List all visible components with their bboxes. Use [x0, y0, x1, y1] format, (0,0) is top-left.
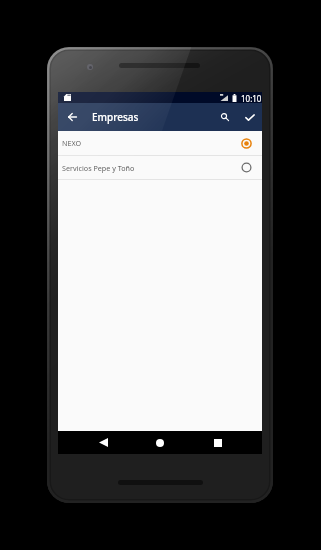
button[interactable]: Recents [202, 431, 234, 454]
button[interactable]: Search [211, 103, 239, 131]
button[interactable]: Home [144, 431, 176, 454]
button[interactable]: NEXO [58, 131, 262, 155]
staticText: NEXO [62, 138, 82, 148]
button[interactable]: Confirm [236, 103, 264, 131]
staticText: Servicios Pepe y Toño [62, 163, 135, 173]
staticText: 10:10 [241, 93, 262, 104]
staticText: Empresas [92, 110, 139, 124]
button[interactable]: Back [87, 431, 119, 454]
button[interactable]: Back [58, 103, 86, 131]
button[interactable]: Servicios Pepe y Toño [58, 156, 262, 179]
